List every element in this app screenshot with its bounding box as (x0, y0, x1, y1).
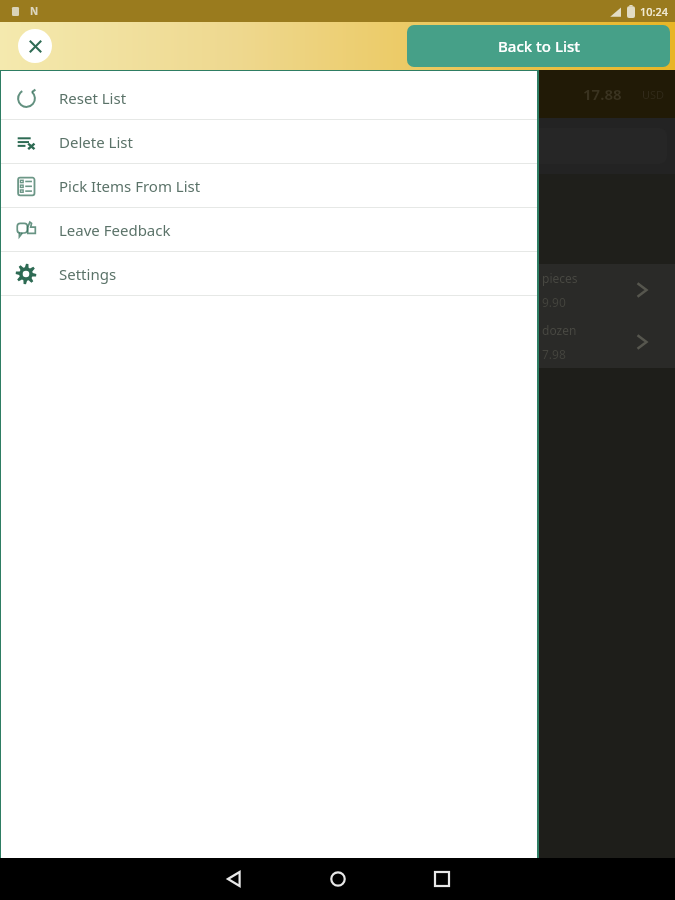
button[interactable]: Home (310, 858, 366, 900)
staticText: 9.90 (542, 294, 566, 310)
button[interactable]: Leave Feedback (1, 208, 537, 251)
button[interactable]: Delete List (1, 120, 537, 163)
staticText: 7.98 (542, 346, 566, 362)
button[interactable]: Back (206, 858, 262, 900)
button[interactable]: Recent apps (414, 858, 470, 900)
staticText: 17.88 (583, 84, 622, 104)
button[interactable]: Close (18, 29, 52, 63)
staticText: 10:24 (640, 4, 669, 19)
staticText: dozen (542, 322, 577, 338)
staticText: N (30, 4, 39, 18)
staticText: USD (642, 87, 665, 102)
staticText: Reset List (59, 88, 127, 108)
button[interactable]: Back to List (407, 25, 670, 67)
staticText: Leave Feedback (59, 220, 171, 240)
button[interactable]: Pick Items From List (1, 164, 537, 207)
staticText: Delete List (59, 132, 133, 152)
button[interactable]: Reset List (1, 76, 537, 119)
staticText: pieces (542, 270, 578, 286)
staticText: Settings (59, 264, 117, 284)
staticText: Pick Items From List (59, 176, 201, 196)
staticText: Back to List (498, 36, 580, 56)
button[interactable]: Settings (1, 252, 537, 295)
